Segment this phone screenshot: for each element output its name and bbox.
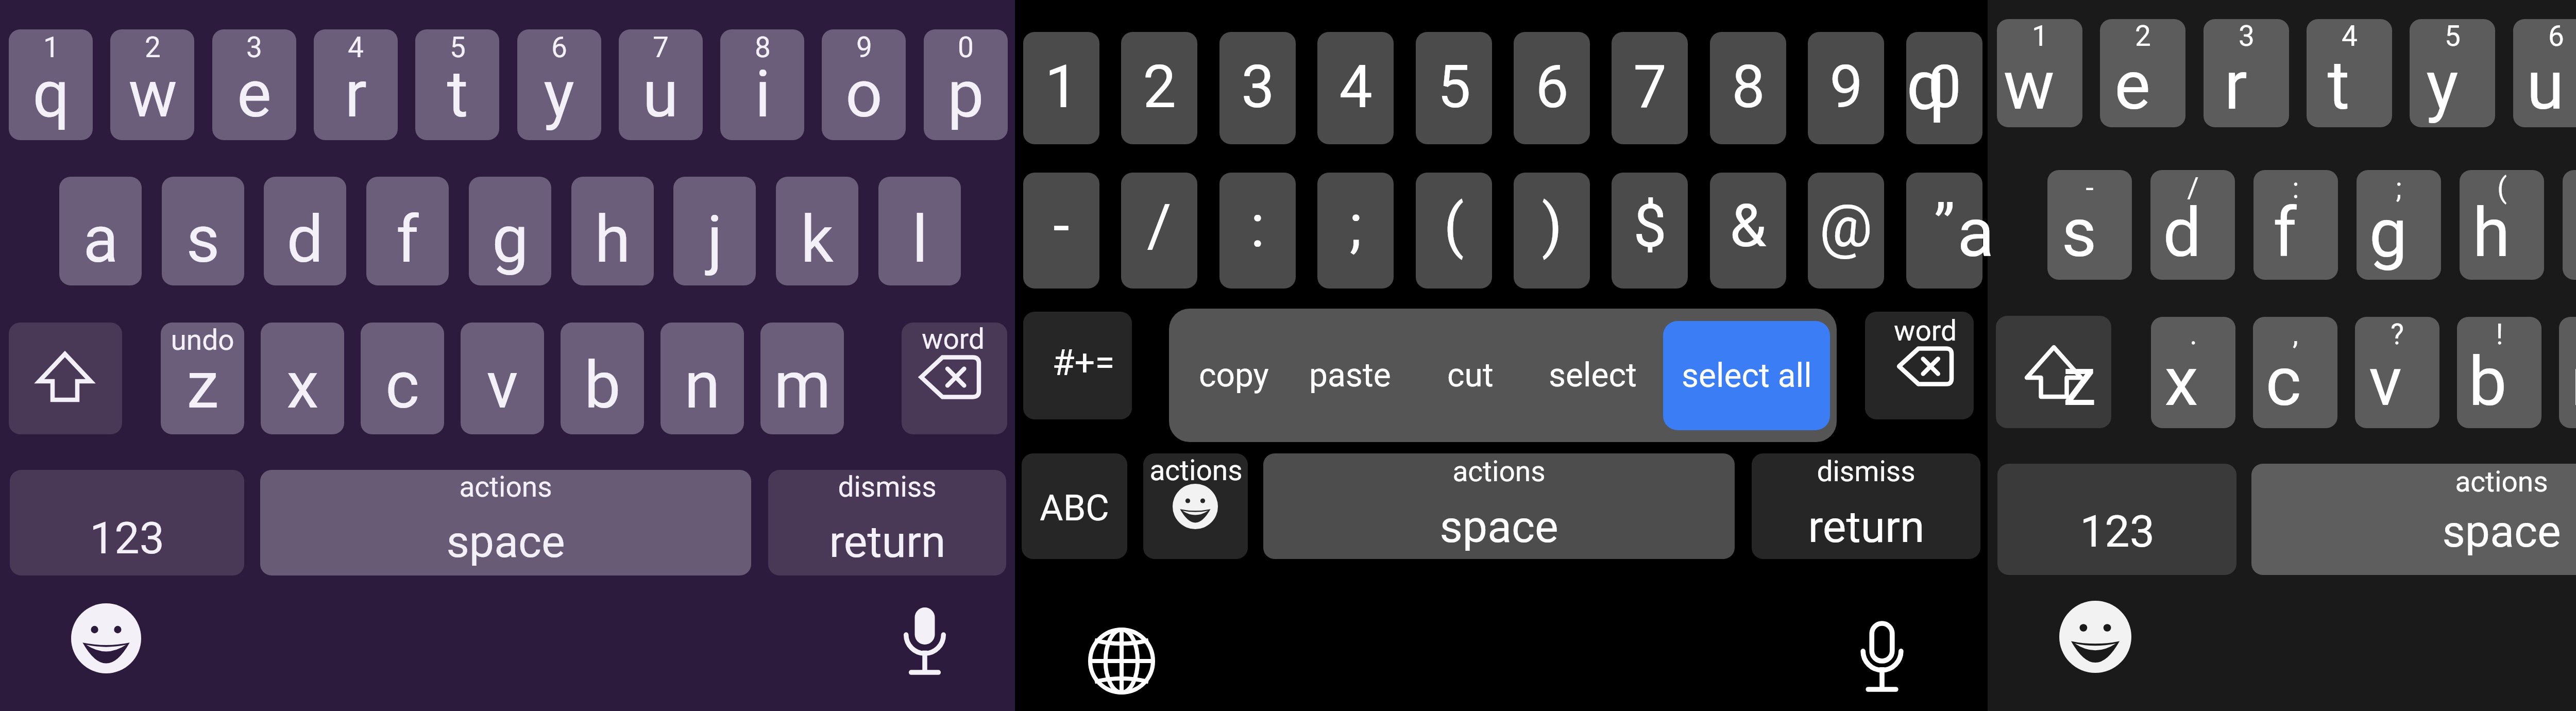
button[interactable]: Emoji [71, 603, 141, 673]
button[interactable] [1906, 32, 1982, 144]
button[interactable] [1710, 173, 1786, 289]
button[interactable] [1710, 32, 1786, 144]
button[interactable]: Backspace [1865, 312, 1974, 419]
button[interactable] [2150, 170, 2235, 280]
button[interactable] [517, 29, 601, 140]
button[interactable] [469, 177, 551, 285]
button[interactable] [561, 323, 644, 434]
button[interactable] [1023, 32, 1099, 144]
button[interactable] [768, 470, 1006, 575]
button[interactable]: Backspace [902, 323, 1007, 434]
staticText: 0 [958, 31, 974, 64]
button[interactable] [1219, 173, 1296, 289]
button[interactable] [366, 177, 449, 285]
button[interactable] [1612, 173, 1688, 289]
button[interactable] [571, 177, 654, 285]
button[interactable]: select [1536, 309, 1649, 442]
button[interactable] [878, 177, 961, 285]
button[interactable]: Emoji [2059, 601, 2131, 673]
button[interactable] [1023, 173, 1099, 289]
button[interactable]: cut [1414, 309, 1527, 442]
staticText: return [1808, 501, 1925, 553]
staticText: w [128, 56, 177, 132]
button[interactable] [9, 29, 93, 140]
button[interactable] [1514, 173, 1590, 289]
button[interactable] [10, 470, 244, 575]
button[interactable] [415, 29, 499, 140]
staticText: ! [2496, 318, 2503, 351]
button[interactable] [264, 177, 346, 285]
button[interactable] [776, 177, 858, 285]
button[interactable] [261, 323, 344, 434]
button[interactable] [2457, 317, 2541, 428]
staticText: - [2086, 172, 2094, 205]
button[interactable] [822, 29, 906, 140]
button[interactable] [1023, 312, 1132, 419]
button[interactable] [1906, 173, 1982, 289]
button[interactable] [1263, 453, 1735, 559]
button[interactable] [1612, 32, 1688, 144]
button[interactable] [2307, 19, 2392, 127]
button[interactable] [260, 470, 751, 575]
button[interactable]: Switch language [1088, 628, 1155, 695]
staticText: return [829, 516, 946, 568]
button[interactable] [619, 29, 703, 140]
button[interactable] [461, 323, 544, 434]
button[interactable]: paste [1293, 309, 1406, 442]
button[interactable] [760, 323, 844, 434]
staticText: 123 [90, 512, 164, 564]
button[interactable] [2100, 19, 2185, 127]
button[interactable] [1997, 464, 2236, 575]
button[interactable] [1022, 453, 1127, 559]
button[interactable] [1997, 19, 2082, 127]
button[interactable] [1416, 32, 1492, 144]
button[interactable] [1143, 453, 1248, 559]
button[interactable] [1808, 32, 1884, 144]
button[interactable] [2355, 317, 2439, 428]
button[interactable]: Voice input [891, 607, 959, 675]
button[interactable] [1121, 32, 1197, 144]
button[interactable] [2253, 317, 2337, 428]
button[interactable] [212, 29, 296, 140]
button[interactable]: select all [1663, 321, 1830, 430]
button[interactable] [1514, 32, 1590, 144]
button[interactable]: copy [1177, 309, 1291, 442]
button[interactable]: Shift [1996, 316, 2111, 428]
button[interactable] [110, 29, 194, 140]
staticText: 3 [2239, 20, 2255, 53]
button[interactable] [59, 177, 142, 285]
button[interactable] [1219, 32, 1296, 144]
button[interactable]: Shift [9, 323, 122, 434]
button[interactable] [660, 323, 744, 434]
button[interactable] [2047, 170, 2132, 280]
button[interactable] [2559, 317, 2576, 428]
button[interactable] [1317, 173, 1394, 289]
staticText: q [1906, 46, 1945, 126]
button[interactable] [2460, 170, 2544, 280]
button[interactable] [1752, 453, 1980, 559]
button[interactable] [2204, 19, 2289, 127]
button[interactable]: Shift [1996, 316, 2111, 428]
button[interactable] [1317, 32, 1394, 144]
button[interactable] [2251, 464, 2576, 575]
button[interactable] [161, 323, 244, 434]
button[interactable] [2410, 19, 2495, 127]
button[interactable] [1416, 173, 1492, 289]
button[interactable] [1121, 173, 1197, 289]
button[interactable] [361, 323, 444, 434]
button[interactable] [924, 29, 1008, 140]
staticText: : [1250, 191, 1265, 261]
button[interactable] [162, 177, 244, 285]
button[interactable] [720, 29, 804, 140]
button[interactable]: Voice input [1848, 623, 1917, 692]
button[interactable] [2563, 170, 2576, 280]
button[interactable] [2357, 170, 2441, 280]
button[interactable] [314, 29, 398, 140]
button[interactable]: Backspace [1865, 312, 1974, 419]
button[interactable] [2151, 317, 2235, 428]
button[interactable]: Shift [9, 323, 122, 434]
button[interactable] [2513, 19, 2576, 127]
button[interactable] [1808, 173, 1884, 289]
button[interactable] [673, 177, 756, 285]
button[interactable] [2253, 170, 2338, 280]
